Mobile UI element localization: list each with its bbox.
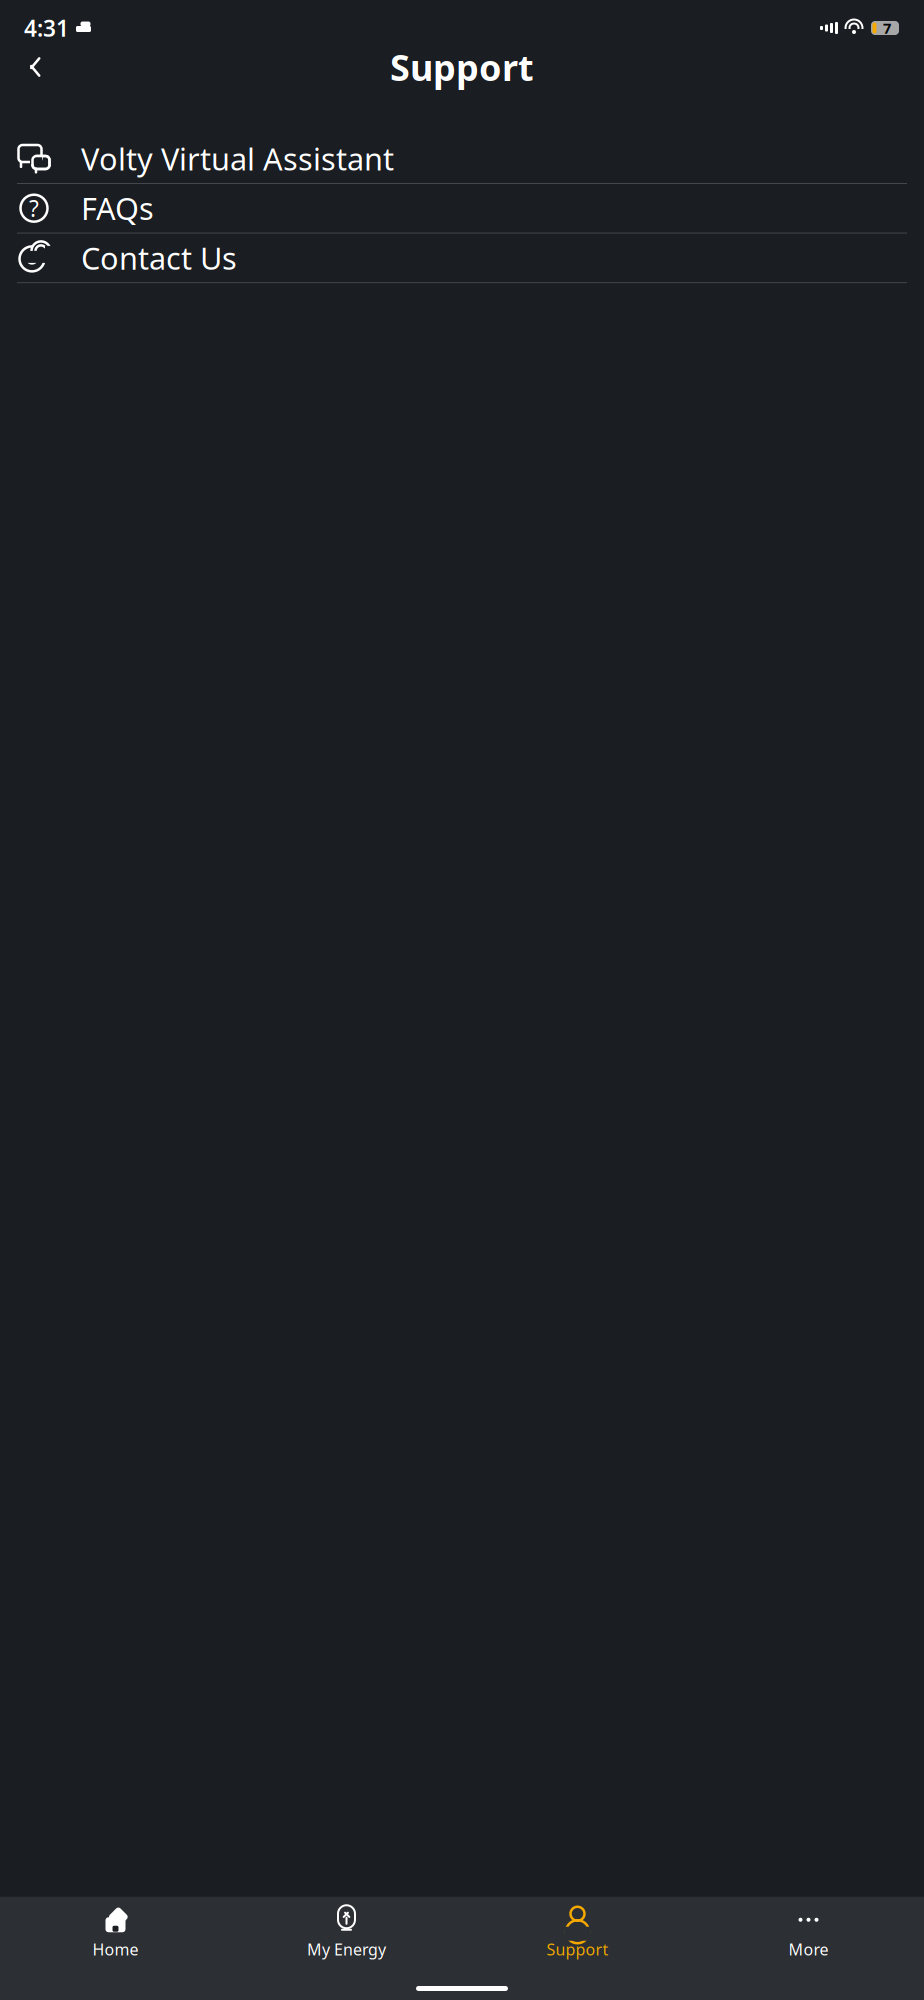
button[interactable]: My Energy <box>231 1897 462 1968</box>
button[interactable]: Home <box>0 1897 231 1968</box>
staticText: 4:31 <box>24 13 69 43</box>
button[interactable]: More <box>693 1897 924 1968</box>
button[interactable]: Volty Virtual Assistant <box>0 134 924 184</box>
staticText: Support <box>390 43 534 91</box>
button[interactable]: Back <box>12 47 52 87</box>
staticText: FAQs <box>81 188 154 228</box>
staticText: Volty Virtual Assistant <box>81 138 394 179</box>
staticText: Home <box>92 1939 138 1960</box>
staticText: 7 <box>883 18 891 38</box>
button[interactable]: ? <box>0 184 924 233</box>
staticText: My Energy <box>307 1939 386 1960</box>
staticText: More <box>788 1939 828 1960</box>
button[interactable]: Contact Us <box>0 233 924 283</box>
staticText: Support <box>546 1939 608 1960</box>
staticText: ? <box>29 193 39 223</box>
staticText: Contact Us <box>81 237 237 278</box>
button[interactable]: Support <box>462 1897 693 1968</box>
